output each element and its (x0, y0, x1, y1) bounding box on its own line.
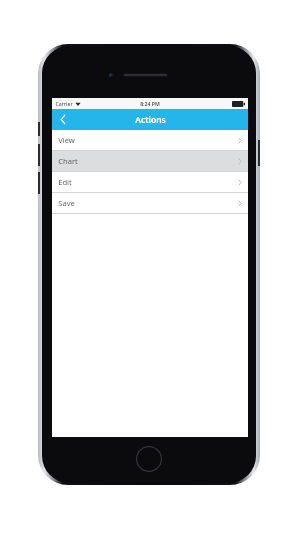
staticText: Chart (58, 156, 78, 166)
button[interactable]: View (52, 130, 248, 150)
button[interactable]: Edit (52, 172, 248, 192)
button[interactable]: Back (52, 109, 74, 130)
button[interactable]: Chart (52, 151, 248, 171)
button[interactable]: Save (52, 193, 248, 213)
staticText: Edit (58, 177, 72, 187)
staticText: Actions (135, 114, 166, 125)
staticText: 8:24 PM (140, 100, 160, 107)
staticText: Carrier (55, 100, 73, 107)
staticText: View (58, 135, 75, 145)
staticText: Save (58, 198, 75, 208)
